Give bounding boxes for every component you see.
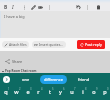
- button[interactable]: More options: [20, 3, 28, 11]
- button[interactable]: q: [0, 86, 11, 100]
- staticText: i: [82, 88, 84, 95]
- staticText: difference: [44, 77, 63, 82]
- button[interactable]: Insert quotes...: [32, 41, 66, 48]
- button[interactable]: o: [88, 86, 99, 100]
- button[interactable]: Undo: [74, 3, 82, 11]
- staticText: p: [103, 88, 107, 95]
- button[interactable]: Search: [3, 76, 10, 83]
- staticText: Post reply: [85, 42, 102, 47]
- button[interactable]: friend: [76, 76, 92, 83]
- staticText: 2: [19, 87, 21, 91]
- button[interactable]: Bold: [2, 3, 10, 11]
- button[interactable]: Pop Room Chat room: [0, 69, 40, 73]
- staticText: I have a big: [4, 14, 25, 19]
- staticText: 8: [85, 87, 87, 91]
- staticText: Share: [12, 59, 23, 64]
- button[interactable]: difference: [40, 75, 67, 84]
- staticText: 6: [63, 87, 65, 91]
- staticText: q: [4, 88, 8, 95]
- staticText: friend: [78, 77, 90, 82]
- staticText: 5: [52, 87, 54, 91]
- button[interactable]: y: [55, 86, 66, 100]
- staticText: u: [70, 88, 74, 95]
- button[interactable]: t: [44, 86, 55, 100]
- button[interactable]: one: [20, 76, 32, 83]
- staticText: t: [49, 88, 51, 95]
- button[interactable]: r: [33, 86, 44, 100]
- button[interactable]: Post reply: [77, 40, 105, 49]
- button[interactable]: e: [22, 86, 33, 100]
- button[interactable]: u: [66, 86, 77, 100]
- button[interactable]: Attach files: [2, 41, 29, 48]
- button[interactable]: Insert image: [36, 3, 44, 11]
- button[interactable]: p: [99, 86, 110, 100]
- staticText: I: [12, 4, 14, 11]
- staticText: 7: [74, 87, 76, 91]
- button[interactable]: i: [77, 86, 88, 100]
- staticText: Insert quotes...: [39, 42, 64, 47]
- button[interactable]: w: [11, 86, 22, 100]
- staticText: w: [14, 88, 19, 95]
- staticText: 0: [107, 87, 109, 91]
- staticText: 3: [30, 87, 32, 91]
- staticText: y: [59, 88, 62, 95]
- staticText: Attach files: [9, 42, 27, 47]
- staticText: 9: [96, 87, 98, 91]
- staticText: o: [92, 88, 96, 95]
- staticText: 4: [41, 87, 43, 91]
- staticText: e: [26, 88, 30, 95]
- staticText: Pop Room Chat room: [5, 69, 37, 73]
- button[interactable]: Italic: [9, 3, 17, 11]
- staticText: one: [22, 77, 30, 82]
- button[interactable]: Insert link: [29, 3, 37, 11]
- button[interactable]: Paste: [94, 3, 102, 11]
- staticText: B: [4, 4, 8, 11]
- staticText: r: [37, 88, 40, 95]
- button[interactable]: Share: [0, 56, 110, 66]
- staticText: 1: [8, 87, 10, 91]
